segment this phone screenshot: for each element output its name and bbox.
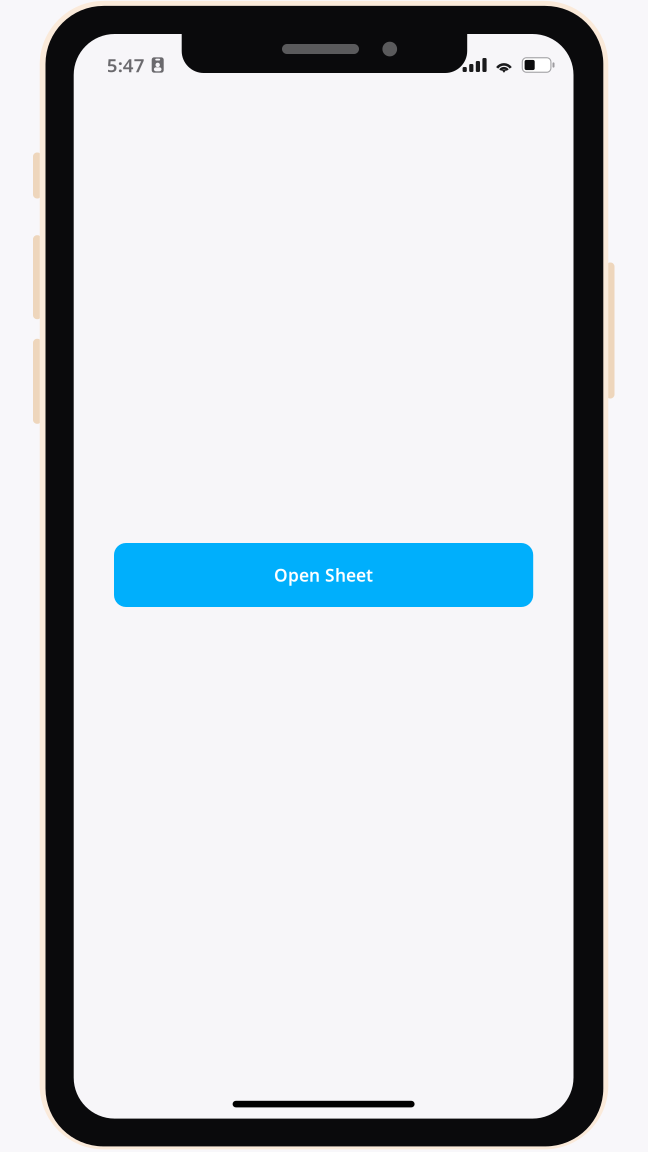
button[interactable]: Open Sheet	[114, 543, 533, 607]
staticText: Open Sheet	[274, 563, 373, 586]
staticText: 5:47	[107, 53, 145, 77]
